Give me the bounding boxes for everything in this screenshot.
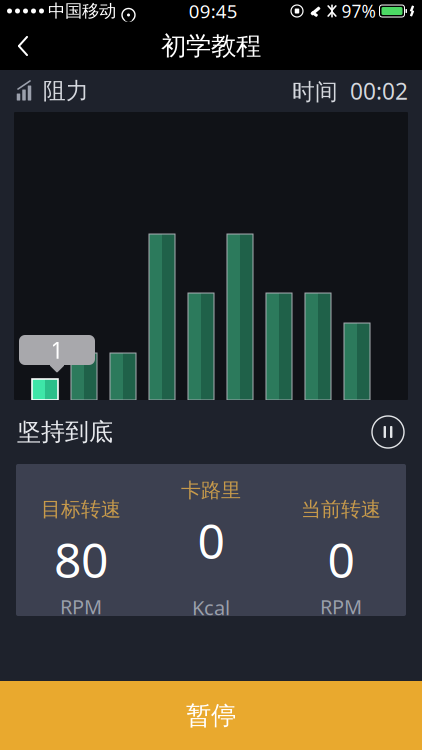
staticText: 中国移动	[48, 0, 116, 22]
staticText: 目标转速	[41, 497, 121, 522]
staticText: 当前转速	[301, 497, 381, 522]
staticText: RPM	[60, 593, 102, 620]
button[interactable]: 暂停	[0, 681, 422, 750]
staticText: RPM	[320, 593, 362, 620]
staticText: Kcal	[192, 594, 230, 621]
staticText: 坚持到底	[17, 417, 113, 447]
button[interactable]: Back	[0, 23, 46, 69]
staticText: 卡路里	[181, 478, 241, 503]
staticText: 0	[327, 528, 354, 591]
staticText: 时间 00:02	[292, 76, 408, 106]
button[interactable]: Pause	[368, 412, 408, 452]
staticText: 阻力	[43, 77, 89, 105]
staticText: 80	[54, 528, 108, 591]
staticText: 0	[197, 509, 224, 572]
staticText: 97%	[341, 0, 375, 22]
staticText: 09:45	[189, 0, 238, 23]
staticText: 1	[50, 335, 63, 365]
staticText: 暂停	[186, 700, 236, 731]
staticText: 初学教程	[161, 30, 261, 61]
